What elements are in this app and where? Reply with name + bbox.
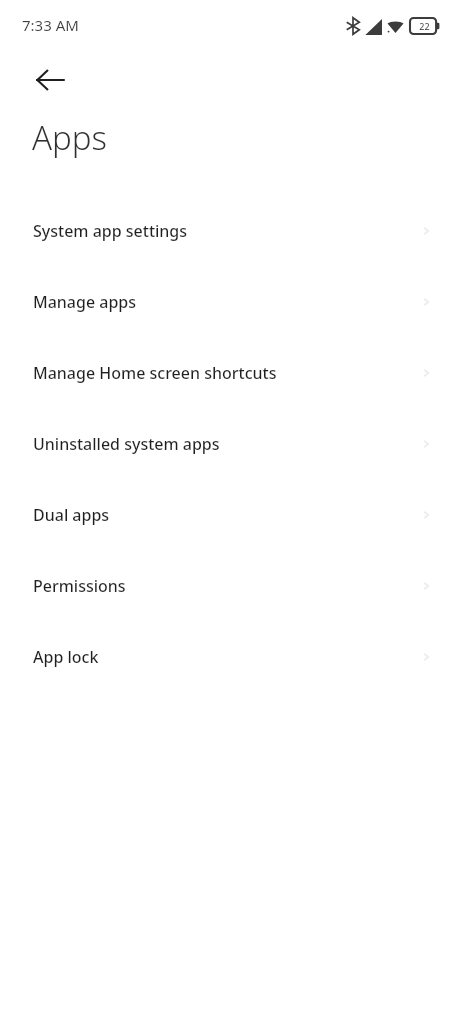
staticText: Uninstalled system apps (33, 433, 220, 455)
button[interactable]: App lock (0, 621, 461, 692)
button[interactable]: Manage apps (0, 266, 461, 337)
staticText: Apps (32, 115, 108, 160)
staticText: 22 (419, 20, 430, 32)
staticText: App lock (33, 646, 99, 668)
button[interactable]: System app settings (0, 195, 461, 266)
staticText: Manage Home screen shortcuts (33, 362, 277, 384)
button[interactable]: Back (22, 52, 78, 108)
staticText: System app settings (33, 220, 188, 242)
staticText: 7:33 AM (22, 15, 79, 35)
button[interactable]: Permissions (0, 550, 461, 621)
staticText: Dual apps (33, 504, 110, 526)
staticText: Manage apps (33, 291, 137, 313)
button[interactable]: Uninstalled system apps (0, 408, 461, 479)
button[interactable]: Dual apps (0, 479, 461, 550)
staticText: Permissions (33, 575, 126, 597)
button[interactable]: Manage Home screen shortcuts (0, 337, 461, 408)
